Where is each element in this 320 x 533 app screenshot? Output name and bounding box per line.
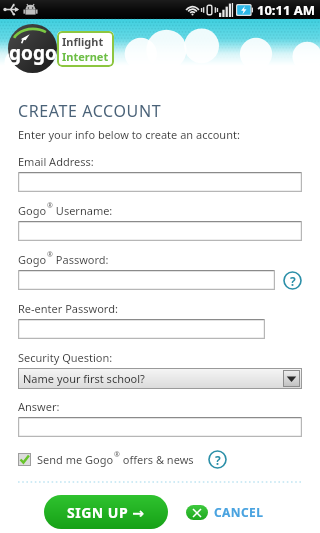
staticText: Gogo (18, 252, 47, 267)
staticText: Password: (53, 252, 109, 267)
staticText: Answer: (18, 399, 60, 414)
button[interactable] (18, 417, 302, 437)
button[interactable]: Name your first school? (18, 368, 302, 389)
button[interactable]: Send me Gogo (18, 452, 194, 467)
staticText: Enter your info below to create an accou… (18, 127, 240, 142)
button[interactable] (18, 319, 265, 339)
staticText: ® (47, 250, 53, 260)
staticText: offers & news (120, 452, 194, 467)
staticText: ? (290, 273, 296, 289)
button[interactable] (18, 221, 302, 241)
button[interactable] (18, 172, 302, 192)
staticText: Inflight (62, 34, 104, 49)
staticText: Re-enter Password: (18, 301, 118, 316)
staticText: gogo (9, 40, 57, 66)
staticText: Name your first school? (23, 371, 145, 386)
staticText: Username: (53, 203, 113, 218)
staticText: 10:11 AM (257, 1, 316, 19)
button[interactable]: Help (208, 450, 227, 469)
staticText: Email Address: (18, 154, 94, 169)
staticText: Internet (62, 49, 109, 64)
button[interactable] (18, 270, 275, 290)
staticText: ® (47, 201, 53, 211)
staticText: ® (114, 450, 120, 460)
staticText: ? (215, 452, 221, 468)
staticText: Security Question: (18, 350, 113, 365)
button[interactable]: SIGN UP → (44, 495, 168, 529)
staticText: Send me Gogo (37, 452, 114, 467)
staticText: Gogo (18, 203, 47, 218)
staticText: CANCEL (214, 504, 264, 520)
staticText: CREATE ACCOUNT (18, 100, 162, 122)
staticText: SIGN UP → (67, 503, 145, 522)
button[interactable]: CANCEL (186, 504, 264, 520)
button[interactable]: Help (283, 271, 302, 290)
